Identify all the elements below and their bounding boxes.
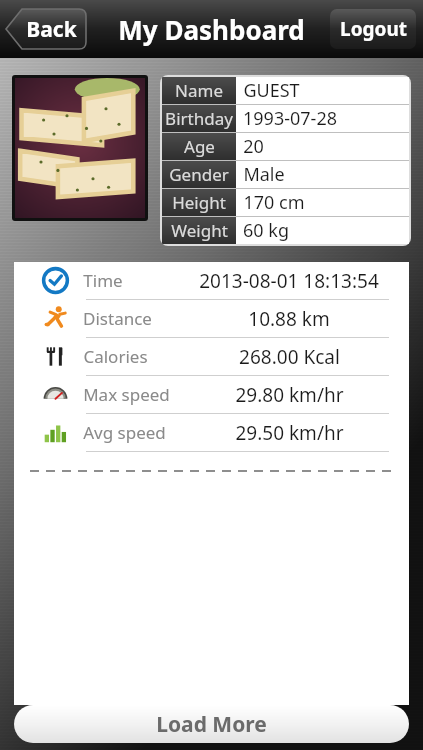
staticText: Avg speed — [83, 421, 166, 444]
staticText: Calories — [83, 345, 148, 368]
button[interactable]: Height — [162, 189, 409, 216]
button[interactable]: Weight — [162, 217, 409, 244]
staticText: 1993-07-28 — [243, 106, 337, 131]
staticText: 60 kg — [243, 218, 289, 243]
button[interactable]: Max speed — [14, 376, 409, 413]
staticText: Max speed — [83, 383, 170, 406]
staticText: Logout — [340, 16, 407, 42]
staticText: 29.50 km/hr — [235, 420, 344, 446]
staticText: 2013-08-01 18:13:54 — [199, 268, 379, 294]
staticText: Gender — [169, 163, 229, 186]
button[interactable]: Age — [162, 133, 409, 160]
button[interactable]: Load More — [14, 705, 409, 743]
button[interactable]: Distance — [14, 300, 409, 337]
staticText: Time — [83, 269, 123, 292]
button[interactable]: Back — [6, 9, 86, 49]
button[interactable]: Calories — [14, 338, 409, 375]
staticText: Name — [175, 79, 223, 102]
button[interactable]: Logout — [330, 9, 416, 49]
staticText: Load More — [156, 710, 267, 739]
staticText: 29.80 km/hr — [235, 382, 344, 408]
staticText: 170 cm — [243, 190, 305, 215]
staticText: Male — [243, 162, 285, 187]
button[interactable]: Time — [14, 262, 409, 299]
button[interactable]: Name — [162, 77, 409, 104]
staticText: 268.00 Kcal — [239, 344, 340, 370]
staticText: Birthday — [165, 107, 233, 130]
staticText: Back — [26, 15, 77, 44]
button[interactable]: Avg speed — [14, 414, 409, 451]
staticText: Age — [184, 135, 215, 158]
staticText: Height — [172, 191, 226, 214]
button[interactable]: Gender — [162, 161, 409, 188]
staticText: Distance — [83, 307, 152, 330]
staticText: My Dashboard — [118, 12, 305, 47]
staticText: GUEST — [243, 78, 300, 103]
staticText: Weight — [171, 219, 228, 242]
staticText: 10.88 km — [248, 306, 330, 332]
staticText: 20 — [243, 134, 264, 159]
button[interactable]: Birthday — [162, 105, 409, 132]
